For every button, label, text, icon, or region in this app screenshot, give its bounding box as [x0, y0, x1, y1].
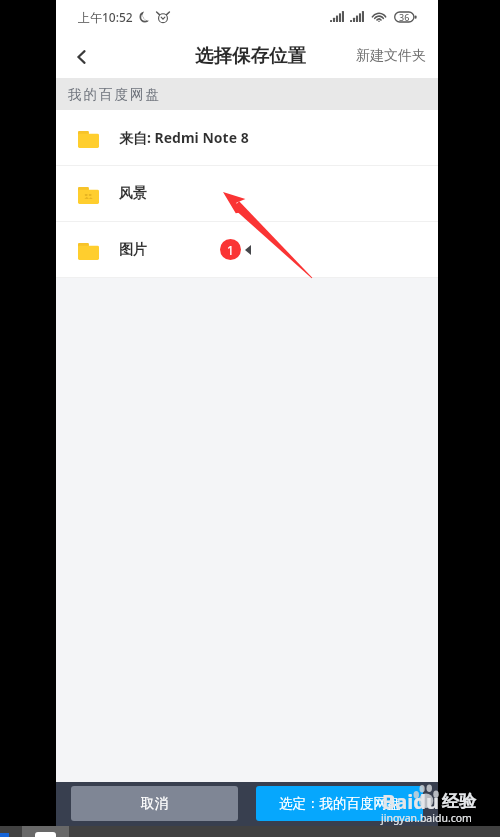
- button[interactable]: 图片: [56, 222, 438, 277]
- staticText: 图片: [119, 241, 147, 259]
- button[interactable]: 新建文件夹: [344, 39, 438, 73]
- button[interactable]: 来自: Redmi Note 8: [56, 110, 438, 165]
- staticText: 选定：我的百度网盘: [279, 795, 401, 812]
- button[interactable]: Back: [64, 39, 98, 73]
- button[interactable]: 风景: [56, 166, 438, 221]
- staticText: Baidu: [382, 788, 439, 815]
- staticText: 我的百度网盘: [67, 86, 160, 103]
- staticText: jingyan.baidu.com: [381, 811, 472, 825]
- staticText: 36: [399, 11, 410, 23]
- staticText: 取消: [141, 795, 168, 812]
- staticText: 新建文件夹: [356, 47, 426, 65]
- staticText: 来自: Redmi Note 8: [119, 128, 249, 147]
- staticText: 1: [227, 242, 234, 258]
- button[interactable]: 取消: [71, 786, 238, 821]
- button[interactable]: 选定：我的百度网盘: [256, 786, 423, 821]
- staticText: 上午10:52: [78, 9, 133, 25]
- staticText: 经验: [442, 791, 476, 812]
- staticText: 选择保存位置: [195, 44, 306, 67]
- staticText: 风景: [119, 185, 147, 203]
